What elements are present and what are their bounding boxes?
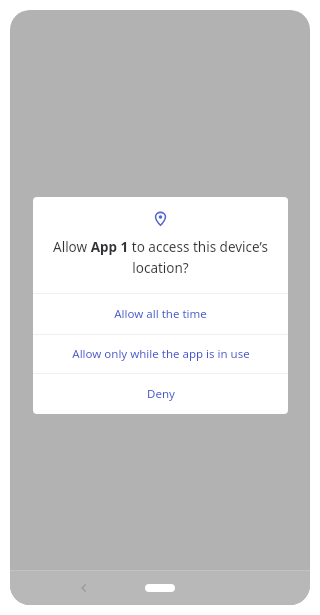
staticText: Allow all the time [114,306,207,322]
staticText: Deny [147,386,175,402]
staticText: Allow only while the app is in use [72,346,250,362]
staticText: Allow App 1 to access this device’s loca… [47,238,274,277]
button[interactable]: Allow all the time [33,294,288,334]
button[interactable]: Back [66,570,102,605]
button[interactable]: Allow only while the app is in use [33,335,288,373]
button[interactable]: Deny [33,374,288,414]
button[interactable]: Home [138,578,182,598]
